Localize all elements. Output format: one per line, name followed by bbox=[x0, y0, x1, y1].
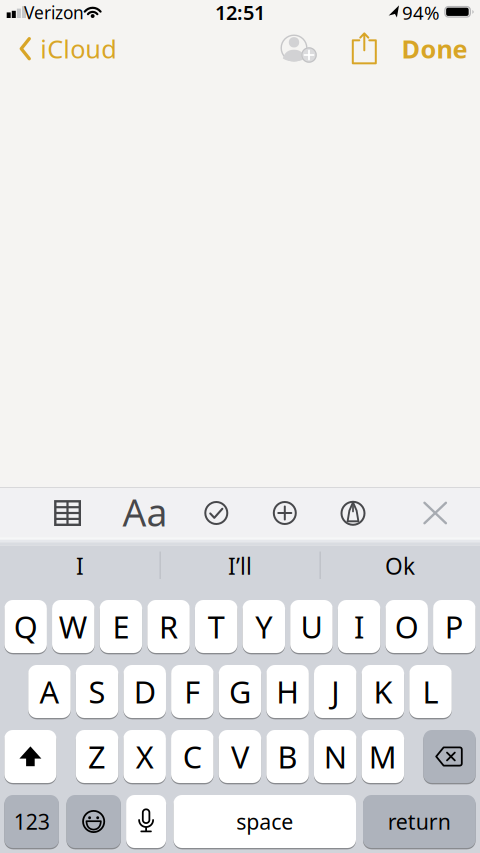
button[interactable]: N bbox=[314, 730, 356, 783]
staticText: I bbox=[354, 606, 364, 647]
button[interactable]: A bbox=[28, 665, 71, 718]
staticText: Ok bbox=[385, 551, 415, 581]
staticText: I’ll bbox=[228, 551, 252, 581]
staticText: Verizon bbox=[24, 1, 84, 24]
staticText: 123 bbox=[14, 807, 50, 836]
button[interactable]: I bbox=[338, 600, 380, 653]
staticText: N bbox=[324, 736, 347, 777]
staticText: T bbox=[208, 606, 225, 647]
button[interactable]: Markup bbox=[331, 491, 375, 535]
staticText: H bbox=[276, 671, 299, 712]
button[interactable]: I bbox=[5, 546, 155, 586]
staticText: A bbox=[39, 671, 59, 712]
button[interactable]: D bbox=[123, 665, 166, 718]
button[interactable]: B bbox=[266, 730, 309, 783]
button[interactable]: R bbox=[147, 600, 190, 653]
button[interactable]: Y bbox=[243, 600, 285, 653]
button[interactable]: V bbox=[219, 730, 261, 783]
staticText: X bbox=[136, 736, 154, 777]
button[interactable]: Checklist bbox=[194, 491, 238, 535]
button[interactable]: Dismiss Keyboard bbox=[413, 491, 457, 535]
button[interactable]: Q bbox=[4, 600, 47, 653]
staticText: Z bbox=[88, 736, 106, 777]
staticText: L bbox=[422, 671, 438, 712]
button[interactable]: Insert bbox=[263, 491, 307, 535]
button[interactable]: L bbox=[409, 665, 452, 718]
button[interactable]: P bbox=[433, 600, 476, 653]
staticText: 12:51 bbox=[215, 0, 265, 26]
button[interactable]: Insert Table bbox=[45, 491, 89, 535]
staticText: F bbox=[184, 671, 200, 712]
staticText: space bbox=[236, 807, 293, 836]
button[interactable]: Add People bbox=[274, 26, 318, 70]
button[interactable]: C bbox=[171, 730, 214, 783]
staticText: B bbox=[278, 736, 298, 777]
staticText: Aa bbox=[122, 487, 167, 537]
button[interactable]: S bbox=[76, 665, 118, 718]
staticText: S bbox=[89, 671, 106, 712]
staticText: K bbox=[373, 671, 392, 712]
button[interactable]: F bbox=[171, 665, 214, 718]
staticText: Y bbox=[255, 606, 272, 647]
staticText: I bbox=[76, 551, 84, 581]
button[interactable]: X bbox=[123, 730, 166, 783]
button[interactable]: 123 bbox=[4, 795, 59, 848]
button[interactable]: Ok bbox=[325, 546, 475, 586]
button[interactable]: Z bbox=[76, 730, 118, 783]
button[interactable]: M bbox=[362, 730, 404, 783]
staticText: E bbox=[112, 606, 129, 647]
staticText: C bbox=[183, 736, 202, 777]
staticText: iCloud bbox=[40, 32, 117, 65]
staticText: return bbox=[388, 807, 451, 836]
staticText: O bbox=[395, 606, 419, 647]
staticText: G bbox=[229, 671, 251, 712]
button[interactable]: J bbox=[314, 665, 356, 718]
button[interactable]: Done bbox=[401, 32, 467, 65]
button[interactable]: E bbox=[100, 600, 142, 653]
staticText: P bbox=[445, 606, 464, 647]
staticText: M bbox=[369, 736, 397, 777]
button[interactable]: I’ll bbox=[165, 546, 315, 586]
button[interactable]: Delete bbox=[423, 730, 476, 783]
staticText: Done bbox=[401, 32, 467, 65]
button[interactable]: Format bbox=[117, 490, 173, 534]
staticText: D bbox=[134, 671, 156, 712]
button[interactable]: W bbox=[52, 600, 94, 653]
staticText: Q bbox=[14, 606, 38, 647]
button[interactable]: Share bbox=[347, 28, 381, 66]
button[interactable]: Shift bbox=[4, 730, 56, 783]
button[interactable]: G bbox=[219, 665, 261, 718]
staticText: J bbox=[331, 671, 339, 712]
button[interactable]: K bbox=[362, 665, 404, 718]
button[interactable]: Emoji bbox=[66, 795, 121, 848]
button[interactable]: space bbox=[173, 795, 356, 848]
button[interactable]: O bbox=[385, 600, 428, 653]
button[interactable]: U bbox=[290, 600, 333, 653]
staticText: 94% bbox=[402, 0, 440, 25]
staticText: W bbox=[59, 606, 88, 647]
button[interactable]: return bbox=[363, 795, 476, 848]
staticText: R bbox=[159, 606, 178, 647]
button[interactable]: Dictate bbox=[126, 795, 166, 848]
staticText: U bbox=[300, 606, 322, 647]
button[interactable]: T bbox=[195, 600, 237, 653]
button[interactable]: iCloud bbox=[19, 32, 117, 65]
staticText: V bbox=[231, 736, 249, 777]
button[interactable]: H bbox=[266, 665, 309, 718]
